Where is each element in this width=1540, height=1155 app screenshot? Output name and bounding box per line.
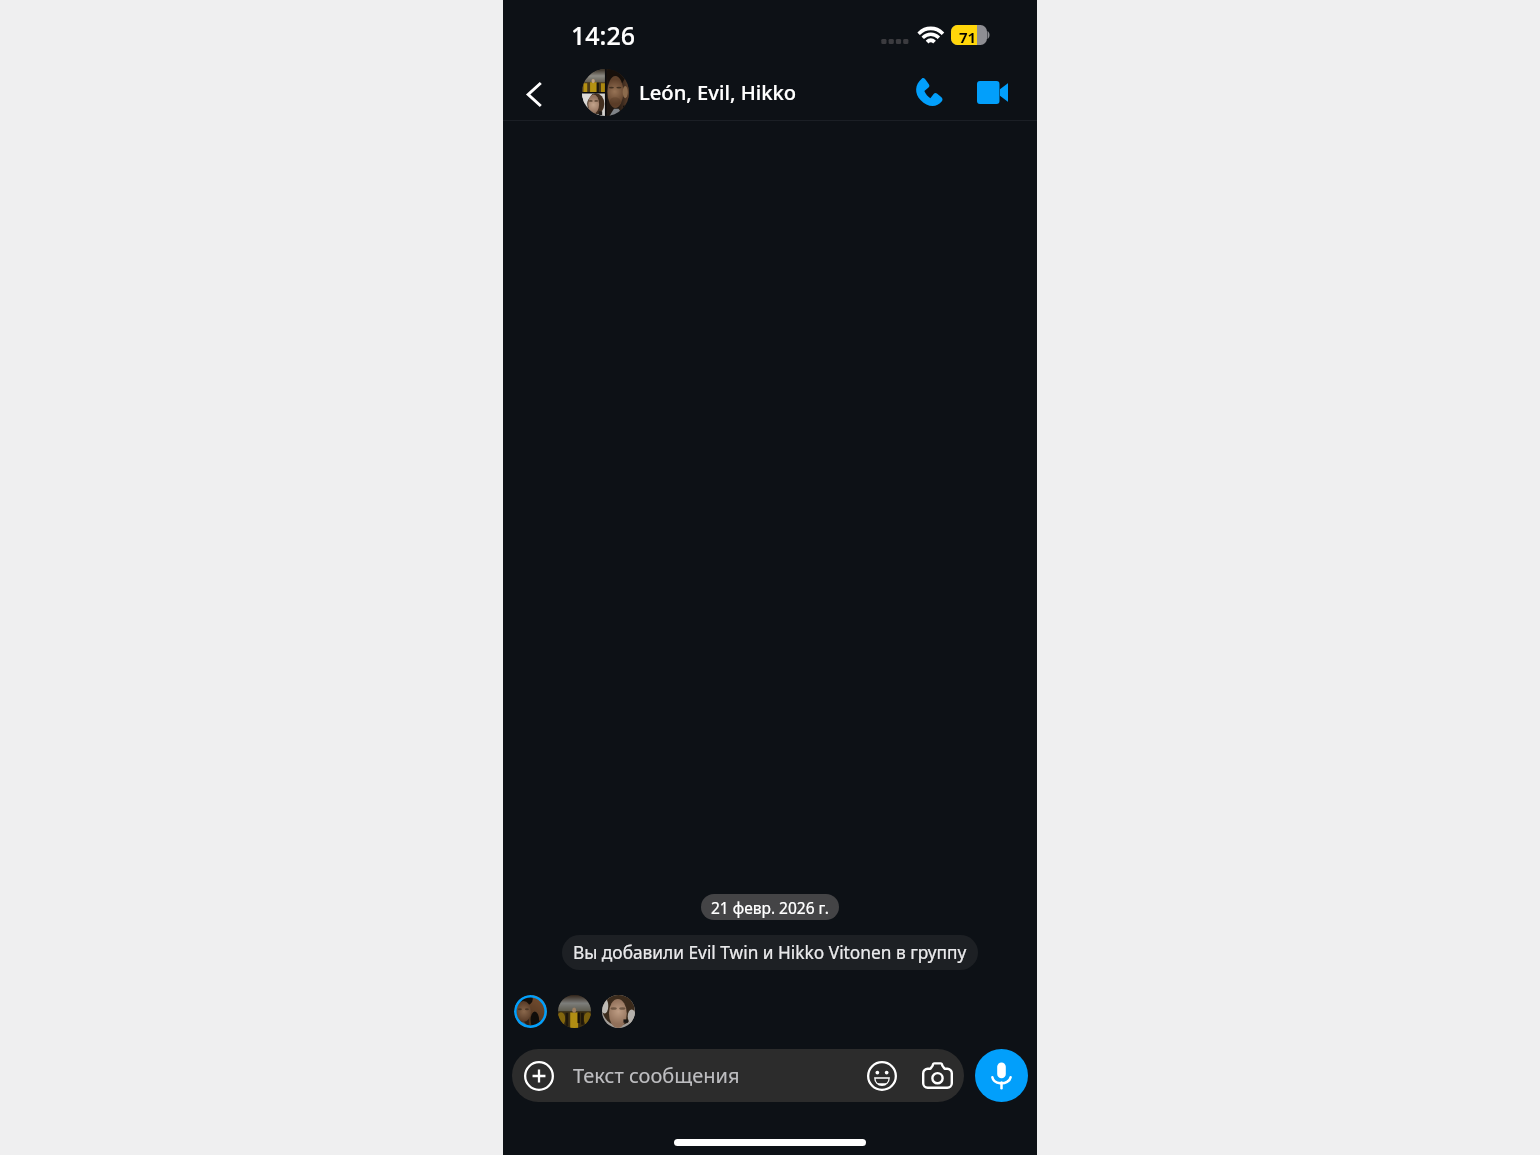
staticText: León, Evil, Hikko (639, 78, 797, 106)
button[interactable]: León, Evil, Hikko (582, 64, 882, 120)
staticText: 71 (959, 27, 977, 47)
button[interactable]: Add attachment (512, 1049, 964, 1102)
button[interactable]: Evil Twin, seen (558, 995, 591, 1028)
button[interactable]: Record voice message (975, 1049, 1028, 1102)
button[interactable]: Вы добавили Evil Twin и Hikko Vitonen в … (573, 935, 967, 970)
button[interactable]: Voice call (903, 64, 955, 120)
button[interactable]: Add attachment (517, 1049, 561, 1102)
button[interactable]: 21 февр. 2026 г. (711, 894, 829, 920)
button[interactable]: Video call (964, 64, 1020, 120)
button[interactable]: León, seen (514, 995, 547, 1028)
button[interactable]: Back (512, 64, 556, 120)
staticText: Текст сообщения (573, 1062, 740, 1089)
staticText: 14:26 (571, 18, 636, 52)
button[interactable]: Stickers (859, 1049, 905, 1102)
staticText: Вы добавили Evil Twin и Hikko Vitonen в … (573, 941, 967, 965)
button[interactable]: Hikko Vitonen, seen (602, 995, 635, 1028)
button[interactable]: Camera (914, 1049, 960, 1102)
staticText: 21 февр. 2026 г. (711, 897, 829, 918)
